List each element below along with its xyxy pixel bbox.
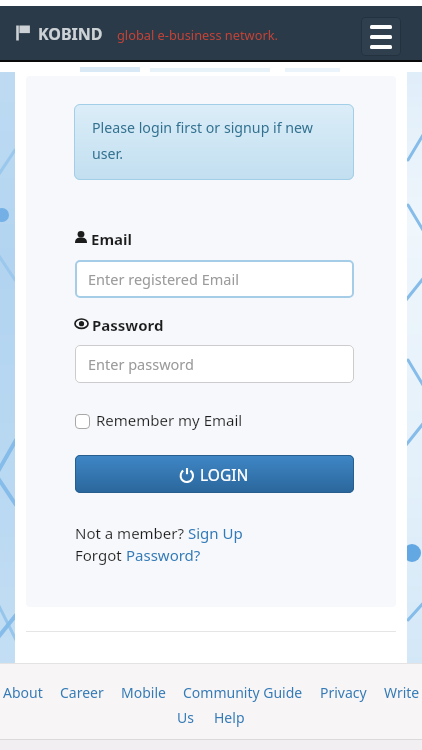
- staticText: Enter password: [88, 354, 194, 374]
- button[interactable]: Write: [384, 683, 420, 702]
- staticText: Forgot: [75, 545, 126, 565]
- staticText: global e-business network.: [117, 26, 278, 43]
- button[interactable]: Us: [177, 708, 194, 727]
- button[interactable]: Community Guide: [183, 683, 303, 702]
- button[interactable]: KOBIND: [38, 23, 103, 45]
- button[interactable]: LOGIN: [75, 455, 354, 493]
- button[interactable]: About: [3, 683, 43, 702]
- staticText: Enter registered Email: [88, 269, 239, 289]
- button[interactable]: Sign Up: [188, 523, 243, 543]
- staticText: Please login first or signup if new user…: [92, 118, 313, 164]
- staticText: Remember my Email: [96, 410, 243, 430]
- button[interactable]: Enter password: [75, 345, 354, 383]
- staticText: Email: [91, 229, 132, 249]
- button[interactable]: Remember my Email: [75, 410, 243, 430]
- staticText: Password: [92, 315, 164, 335]
- button[interactable]: [361, 17, 401, 56]
- staticText: Not a member?: [75, 523, 188, 543]
- button[interactable]: Privacy: [320, 683, 367, 702]
- staticText: LOGIN: [200, 464, 249, 485]
- button[interactable]: Enter registered Email: [75, 260, 354, 298]
- button[interactable]: Help: [214, 708, 245, 727]
- button[interactable]: Password?: [126, 545, 201, 565]
- button[interactable]: Mobile: [121, 683, 166, 702]
- button[interactable]: Career: [60, 683, 104, 702]
